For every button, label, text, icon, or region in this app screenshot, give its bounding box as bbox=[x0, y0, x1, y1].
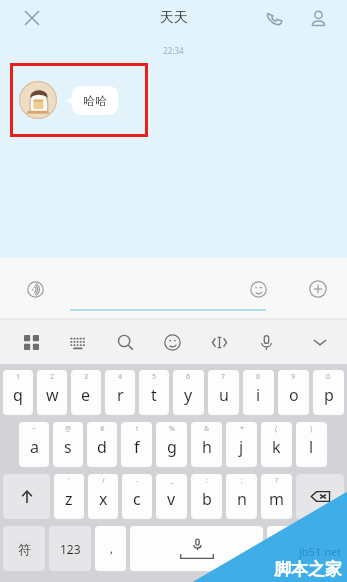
button[interactable]: : bbox=[191, 474, 222, 519]
button[interactable]: 7 bbox=[208, 370, 239, 415]
button[interactable]: 8 bbox=[243, 370, 274, 415]
button[interactable]: @ bbox=[53, 422, 83, 467]
button[interactable]: Voice input bbox=[251, 327, 281, 357]
button[interactable]: 哈哈 bbox=[19, 63, 139, 137]
staticText: @ bbox=[65, 424, 72, 434]
button[interactable]: 符 bbox=[3, 526, 45, 571]
staticText: _ bbox=[170, 476, 174, 486]
button[interactable]: Keyboard layout bbox=[63, 327, 93, 357]
staticText: ， bbox=[105, 541, 117, 556]
button[interactable]: 9 bbox=[278, 370, 309, 415]
staticText: y bbox=[184, 384, 193, 406]
button[interactable]: 2 bbox=[37, 370, 67, 415]
staticText: 天天 bbox=[160, 9, 188, 27]
staticText: b bbox=[202, 488, 212, 510]
button[interactable]: * bbox=[226, 422, 257, 467]
button[interactable]: Voice message bbox=[20, 274, 50, 304]
staticText: : bbox=[206, 476, 208, 486]
staticText: * bbox=[240, 424, 244, 434]
staticText: l bbox=[309, 436, 314, 458]
staticText: % bbox=[169, 424, 175, 434]
button[interactable]: ， bbox=[95, 526, 126, 571]
staticText: a bbox=[30, 436, 39, 458]
button[interactable]: 4 bbox=[105, 370, 135, 415]
staticText: 哈哈 bbox=[83, 93, 107, 108]
button[interactable]: Emoticons bbox=[157, 327, 187, 357]
staticText: - bbox=[136, 476, 139, 486]
staticText: z bbox=[65, 488, 73, 510]
button[interactable]: / bbox=[88, 474, 118, 519]
button[interactable]: & bbox=[191, 422, 222, 467]
staticText: ; bbox=[241, 476, 243, 486]
staticText: x bbox=[99, 488, 108, 510]
staticText: 8 bbox=[256, 372, 261, 382]
staticText: # bbox=[100, 424, 105, 434]
staticText: & bbox=[204, 424, 210, 434]
staticText: ? bbox=[275, 476, 279, 486]
staticText: t bbox=[151, 384, 157, 406]
button[interactable]: - bbox=[122, 474, 152, 519]
button[interactable]: 123 bbox=[49, 526, 91, 571]
button[interactable]: ~ bbox=[19, 422, 49, 467]
staticText: r bbox=[117, 384, 124, 406]
button[interactable]: ? bbox=[261, 474, 292, 519]
staticText: m bbox=[269, 488, 284, 510]
staticText: 9 bbox=[291, 372, 296, 382]
staticText: 脚本之家 bbox=[274, 559, 342, 580]
button[interactable]: % bbox=[156, 422, 187, 467]
staticText: ↵ bbox=[318, 541, 329, 556]
button[interactable]: 1 bbox=[3, 370, 33, 415]
staticText: 符 bbox=[18, 541, 31, 557]
button[interactable]: 0 bbox=[313, 370, 344, 415]
staticText: ! bbox=[136, 424, 138, 434]
staticText: jb51.net bbox=[299, 544, 342, 559]
staticText: s bbox=[64, 436, 72, 458]
staticText: g bbox=[167, 436, 177, 458]
staticText: v bbox=[167, 488, 176, 510]
staticText: 1 bbox=[16, 372, 21, 382]
button[interactable]: 6 bbox=[173, 370, 204, 415]
staticText: n bbox=[237, 488, 247, 510]
staticText: p bbox=[324, 384, 334, 406]
staticText: q bbox=[13, 384, 23, 406]
button[interactable]: Apps bbox=[16, 327, 46, 357]
button[interactable]: 。 bbox=[267, 526, 298, 571]
staticText: 6 bbox=[186, 372, 191, 382]
button[interactable]: Backspace bbox=[296, 474, 344, 519]
staticText: k bbox=[272, 436, 281, 458]
staticText: w bbox=[46, 384, 59, 406]
staticText: h bbox=[202, 436, 212, 458]
button[interactable]: Search bbox=[110, 327, 140, 357]
staticText: ( bbox=[275, 424, 278, 434]
staticText: ~ bbox=[32, 424, 37, 434]
button[interactable]: ) bbox=[296, 422, 327, 467]
button[interactable]: 3 bbox=[71, 370, 101, 415]
staticText: 0 bbox=[326, 372, 331, 382]
button[interactable]: More bbox=[303, 274, 333, 304]
button[interactable]: Shift bbox=[3, 474, 50, 519]
button[interactable]: ↵ bbox=[302, 526, 344, 571]
button[interactable]: 5 bbox=[139, 370, 169, 415]
staticText: 5 bbox=[152, 372, 157, 382]
button[interactable]: ; bbox=[226, 474, 257, 519]
button[interactable] bbox=[70, 283, 266, 311]
staticText: 7 bbox=[221, 372, 226, 382]
button[interactable]: _ bbox=[156, 474, 187, 519]
button[interactable]: Close bbox=[18, 4, 46, 32]
staticText: ' bbox=[68, 476, 70, 486]
staticText: d bbox=[97, 436, 107, 458]
button[interactable]: Text tools bbox=[204, 327, 234, 357]
button[interactable]: # bbox=[87, 422, 117, 467]
staticText: 22:34 bbox=[0, 45, 347, 56]
staticText: j bbox=[239, 436, 244, 458]
staticText: u bbox=[219, 384, 229, 406]
staticText: i bbox=[256, 384, 261, 406]
button[interactable]: Call bbox=[259, 3, 289, 33]
button[interactable]: ! bbox=[121, 422, 152, 467]
button[interactable]: Collapse keyboard bbox=[305, 327, 335, 357]
button[interactable]: Contact profile bbox=[303, 3, 333, 33]
button[interactable]: ' bbox=[54, 474, 84, 519]
button[interactable]: Emoji bbox=[243, 274, 273, 304]
button[interactable]: ( bbox=[261, 422, 292, 467]
button[interactable]: Space bbox=[130, 526, 263, 571]
